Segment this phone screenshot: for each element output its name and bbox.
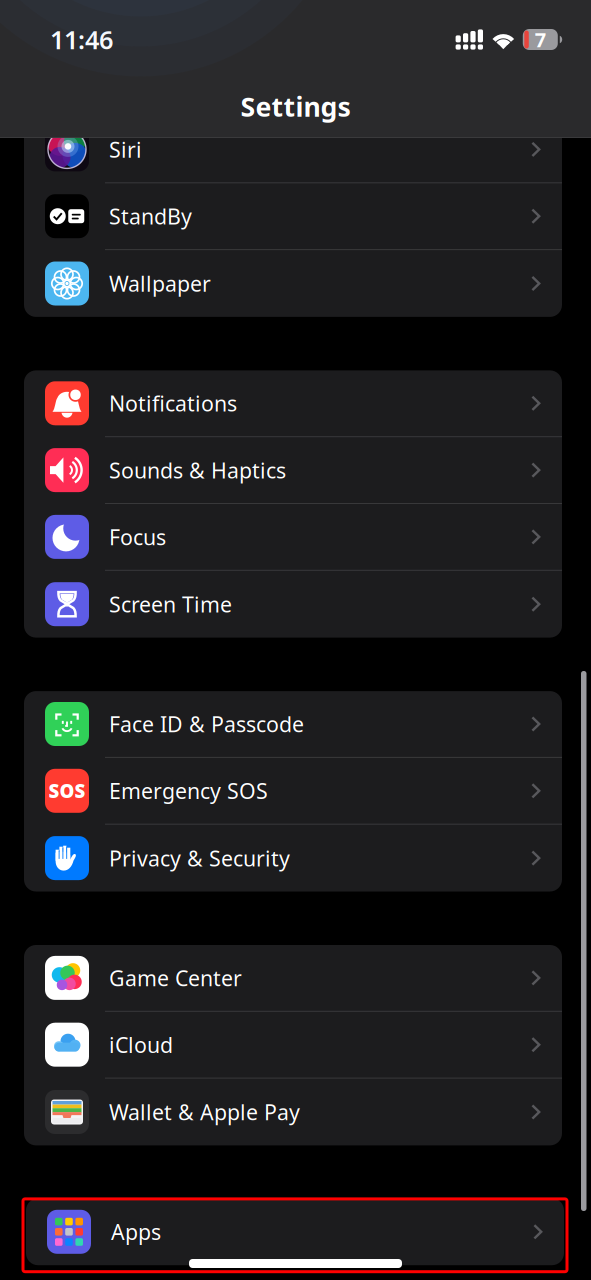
button[interactable]: Siri xyxy=(24,116,562,183)
button[interactable]: iCloud xyxy=(24,1012,562,1079)
staticText: Emergency SOS xyxy=(109,777,268,805)
button[interactable]: Sounds & Haptics xyxy=(24,437,562,504)
staticText: Apps xyxy=(111,1218,161,1246)
button[interactable]: Privacy & Security xyxy=(24,825,562,891)
staticText: Notifications xyxy=(109,389,237,417)
staticText: Siri xyxy=(109,135,142,163)
staticText: 11:46 xyxy=(50,23,113,56)
button[interactable]: Focus xyxy=(24,504,562,571)
staticText: Wallet & Apple Pay xyxy=(109,1098,300,1126)
button[interactable]: StandBy xyxy=(24,183,562,250)
staticText: StandBy xyxy=(109,202,192,230)
button[interactable]: SOS xyxy=(24,758,562,825)
staticText: 7 xyxy=(535,26,546,53)
staticText: Screen Time xyxy=(109,590,232,618)
staticText: Focus xyxy=(109,523,166,551)
staticText: iCloud xyxy=(109,1030,173,1059)
staticText: Face ID & Passcode xyxy=(109,710,304,738)
button[interactable]: Apps xyxy=(26,1198,564,1265)
staticText: Wallpaper xyxy=(109,269,211,298)
button[interactable]: Face ID & Passcode xyxy=(24,691,562,758)
staticText: Sounds & Haptics xyxy=(109,456,286,484)
staticText: Game Center xyxy=(109,964,242,992)
button[interactable]: Wallet & Apple Pay xyxy=(24,1079,562,1145)
staticText: Settings xyxy=(240,89,350,124)
button[interactable]: Game Center xyxy=(24,945,562,1012)
button[interactable]: Wallpaper xyxy=(24,250,562,317)
button[interactable]: Screen Time xyxy=(24,571,562,638)
staticText: SOS xyxy=(48,778,85,803)
button[interactable]: Notifications xyxy=(24,370,562,437)
staticText: Privacy & Security xyxy=(109,844,290,872)
